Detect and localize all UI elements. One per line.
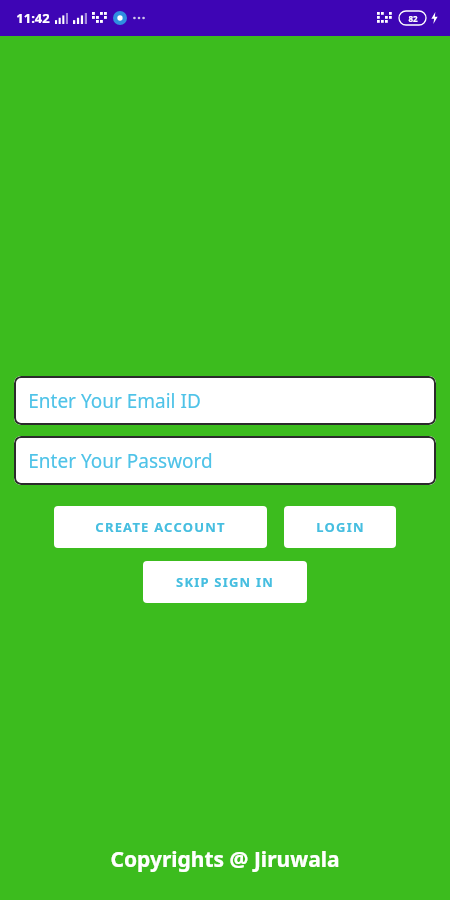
staticText: CREATE ACCOUNT	[95, 518, 226, 536]
button[interactable]: Enter Your Password	[14, 436, 436, 485]
staticText: Enter Your Password	[28, 448, 213, 474]
button[interactable]: CREATE ACCOUNT	[54, 506, 267, 548]
staticText: LOGIN	[316, 518, 365, 536]
button[interactable]: LOGIN	[284, 506, 396, 548]
button[interactable]: Enter Your Email ID	[14, 376, 436, 425]
button[interactable]: SKIP SIGN IN	[143, 561, 307, 603]
staticText: 82	[408, 13, 418, 24]
staticText: SKIP SIGN IN	[176, 573, 274, 591]
staticText: 11:42	[16, 9, 50, 27]
staticText: Enter Your Email ID	[28, 388, 201, 414]
staticText: Copyrights @ Jiruwala	[110, 845, 340, 874]
